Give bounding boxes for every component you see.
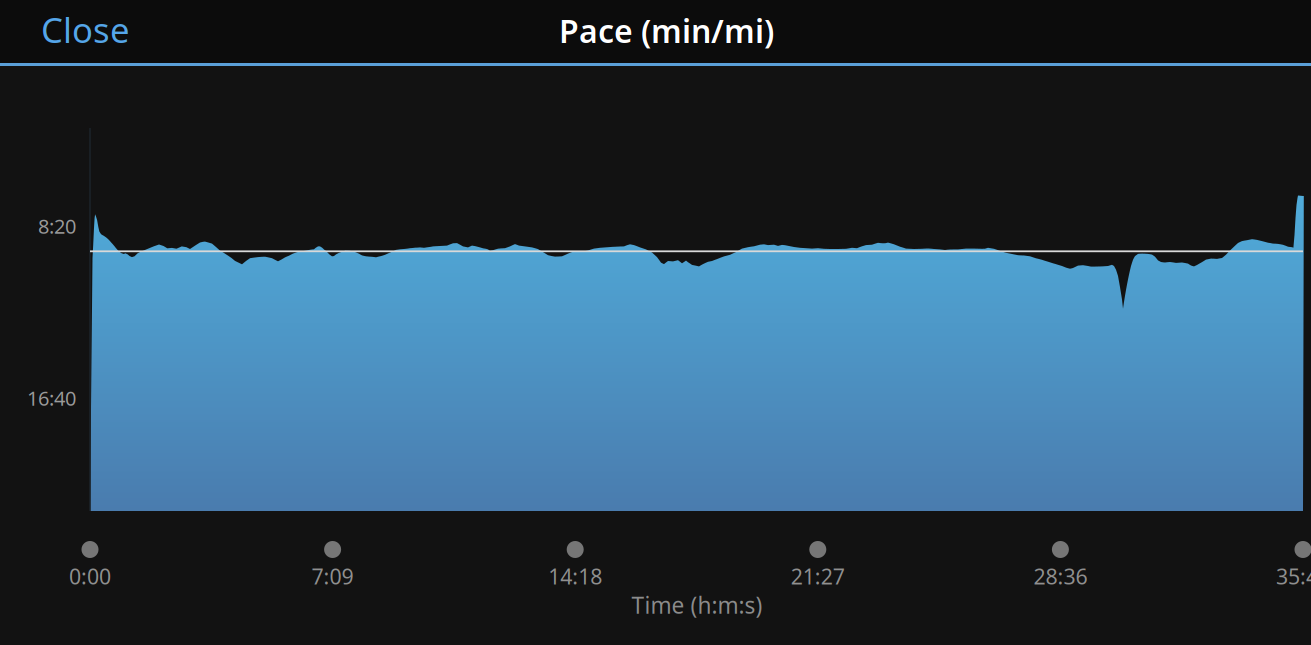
staticText: 35:45 [1276,562,1311,590]
button[interactable]: Close [0,0,150,63]
staticText: 16:40 [27,385,76,411]
staticText: Time (h:m:s) [631,590,762,620]
staticText: 8:20 [38,213,76,239]
staticText: Close [41,6,130,52]
staticText: 28:36 [1033,562,1087,590]
staticText: 14:18 [548,562,602,590]
staticText: 21:27 [791,562,845,590]
staticText: 7:09 [312,562,354,590]
staticText: Pace (min/mi) [559,9,774,52]
staticText: 0:00 [69,562,111,590]
